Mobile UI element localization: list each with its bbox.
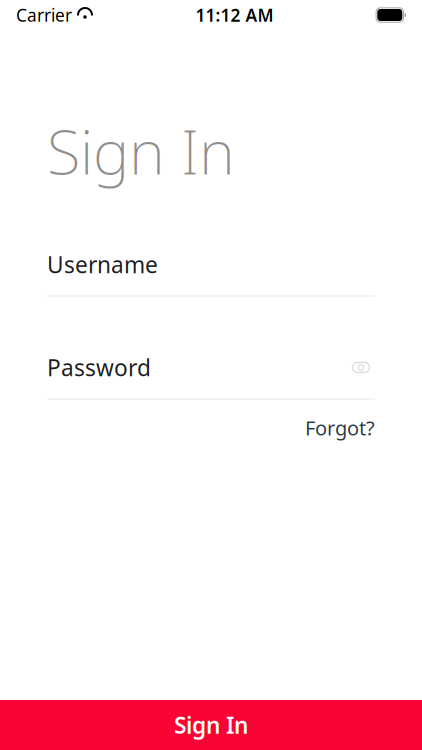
staticText: Carrier — [16, 3, 72, 26]
staticText: 11:12 AM — [196, 3, 274, 26]
button[interactable]: Sign In — [0, 700, 422, 750]
staticText: Forgot? — [305, 414, 375, 441]
staticText: Sign In — [174, 710, 248, 740]
button[interactable]: Show password — [347, 356, 375, 378]
staticText: Password — [47, 352, 151, 382]
staticText: Username — [47, 249, 158, 279]
staticText: Sign In — [47, 110, 235, 191]
button[interactable]: Forgot? — [305, 410, 375, 445]
